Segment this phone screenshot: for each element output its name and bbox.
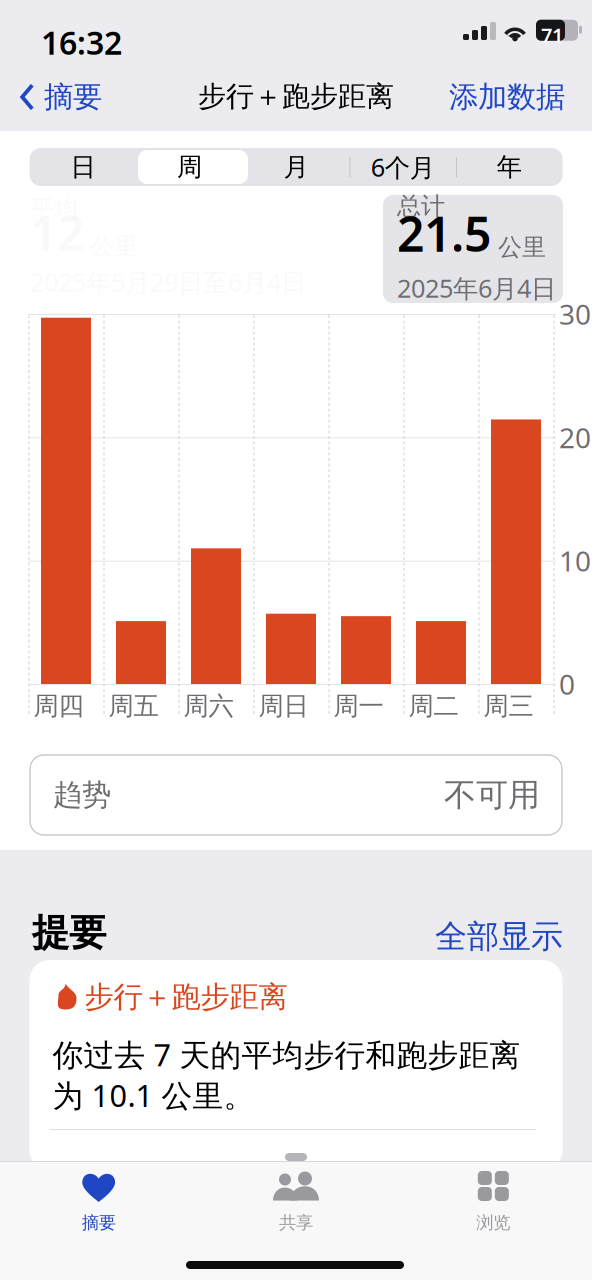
staticText: 30 (559, 295, 591, 333)
staticText: 不可用 (444, 775, 540, 815)
staticText: 周六 (183, 690, 233, 721)
staticText: 日 (70, 151, 95, 182)
staticText: 周日 (258, 690, 308, 721)
staticText: 步行＋跑步距离 (198, 79, 394, 114)
staticText: 浏览 (476, 1212, 510, 1233)
staticText: 月 (284, 151, 309, 182)
staticText: 周五 (108, 690, 158, 721)
button[interactable]: 日 (30, 148, 136, 186)
staticText: 2025年6月4日 (397, 271, 556, 305)
button[interactable]: 周 (136, 148, 243, 186)
staticText: 摘要 (44, 79, 102, 115)
staticText: 步行＋跑步距离 (84, 979, 287, 1015)
staticText: 提要 (32, 910, 106, 956)
staticText: 总计 (397, 191, 445, 221)
staticText: 周一 (333, 690, 383, 721)
staticText: 周四 (33, 690, 83, 721)
staticText: 你过去 7 天的平均步行和跑步距离为 10.1 公里。 (52, 1034, 520, 1115)
staticText: 6个月 (371, 150, 435, 184)
button[interactable]: 摘要 (0, 1171, 197, 1237)
staticText: 周二 (408, 690, 458, 721)
staticText: 摘要 (82, 1212, 116, 1233)
button[interactable]: 摘要 (14, 69, 108, 125)
button[interactable]: 浏览 (395, 1171, 592, 1237)
button[interactable]: 年 (456, 148, 563, 186)
staticText: 年 (497, 151, 522, 182)
staticText: 周 (177, 151, 202, 182)
staticText: 71 (541, 22, 563, 48)
staticText: 21.5 (397, 201, 491, 265)
button[interactable]: 趋势 (30, 755, 562, 835)
button[interactable]: 6个月 (349, 148, 456, 186)
staticText: 趋势 (53, 777, 111, 813)
button[interactable]: 全部显示 (429, 911, 569, 962)
button[interactable]: 共享 (197, 1171, 395, 1237)
staticText: 添加数据 (449, 79, 565, 115)
button[interactable]: 月 (243, 148, 349, 186)
staticText: 公里 (498, 232, 546, 262)
staticText: 0 (559, 665, 575, 703)
button[interactable]: 添加数据 (442, 69, 572, 125)
staticText: 共享 (279, 1212, 313, 1233)
staticText: 16:32 (41, 21, 122, 63)
staticText: 全部显示 (435, 917, 563, 956)
staticText: 20 (559, 419, 591, 456)
staticText: 10 (559, 542, 591, 579)
staticText: 周三 (483, 690, 533, 721)
